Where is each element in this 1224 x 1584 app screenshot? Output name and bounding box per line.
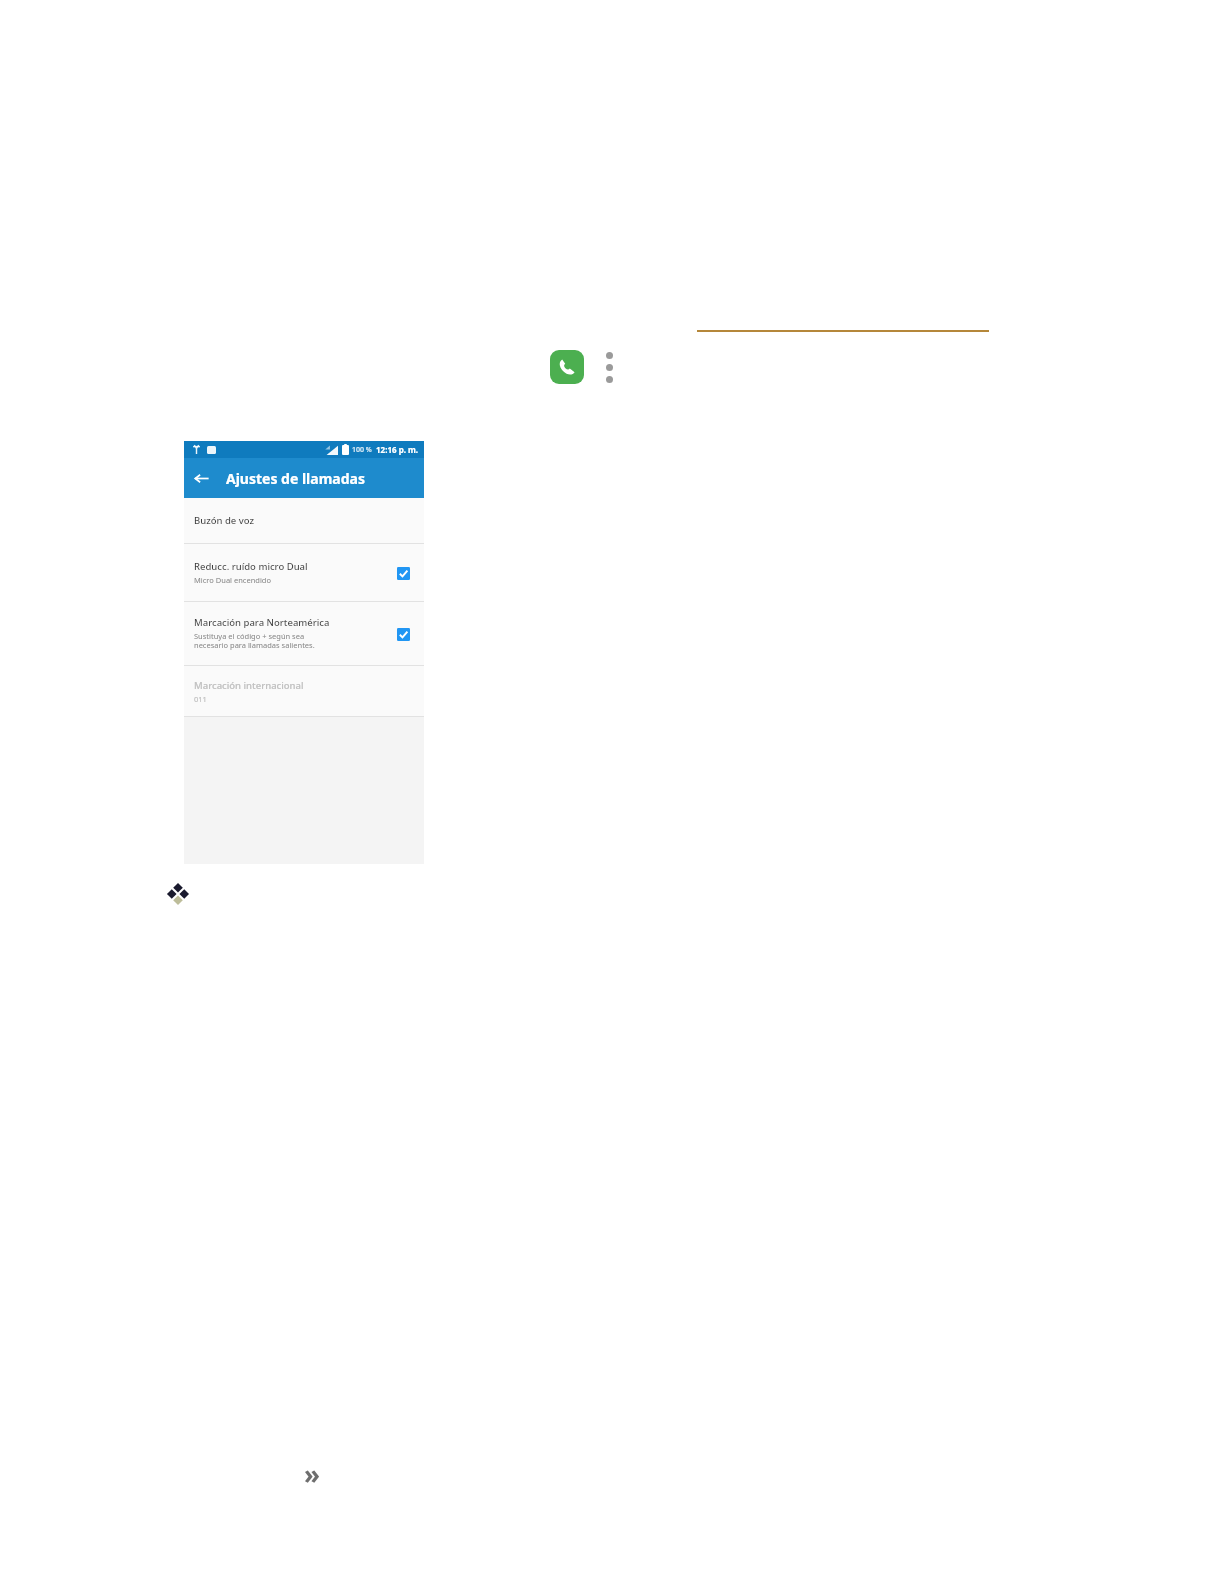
staticText: Marcación para Norteamérica [194,616,330,629]
button[interactable]: Buzón de voz [184,498,424,543]
staticText: 12:16 p. m. [376,444,419,455]
staticText: Marcación internacional [194,679,304,692]
button[interactable]: More options [598,350,620,384]
staticText: » [304,1456,320,1490]
staticText: 011 [194,694,207,704]
staticText: 100 % [352,445,372,455]
staticText: Micro Dual encendido [194,575,272,585]
staticText: Reducc. ruído micro Dual [194,560,308,573]
button[interactable]: Back [184,461,218,495]
button[interactable]: Reducc. ruído micro Dual [184,544,424,601]
button[interactable]: Marcación internacional [184,666,424,716]
button[interactable]: Phone app [550,350,584,384]
staticText: Buzón de voz [194,514,254,527]
button[interactable]: Marcación para Norteamérica [184,602,424,665]
staticText: Ajustes de llamadas [226,469,365,488]
staticText: Sustituya el código + según sea necesari… [194,631,315,651]
button[interactable]: Toggle Marcación para Norteamérica [392,623,414,645]
button[interactable]: Toggle Reducc. ruído micro Dual [392,562,414,584]
